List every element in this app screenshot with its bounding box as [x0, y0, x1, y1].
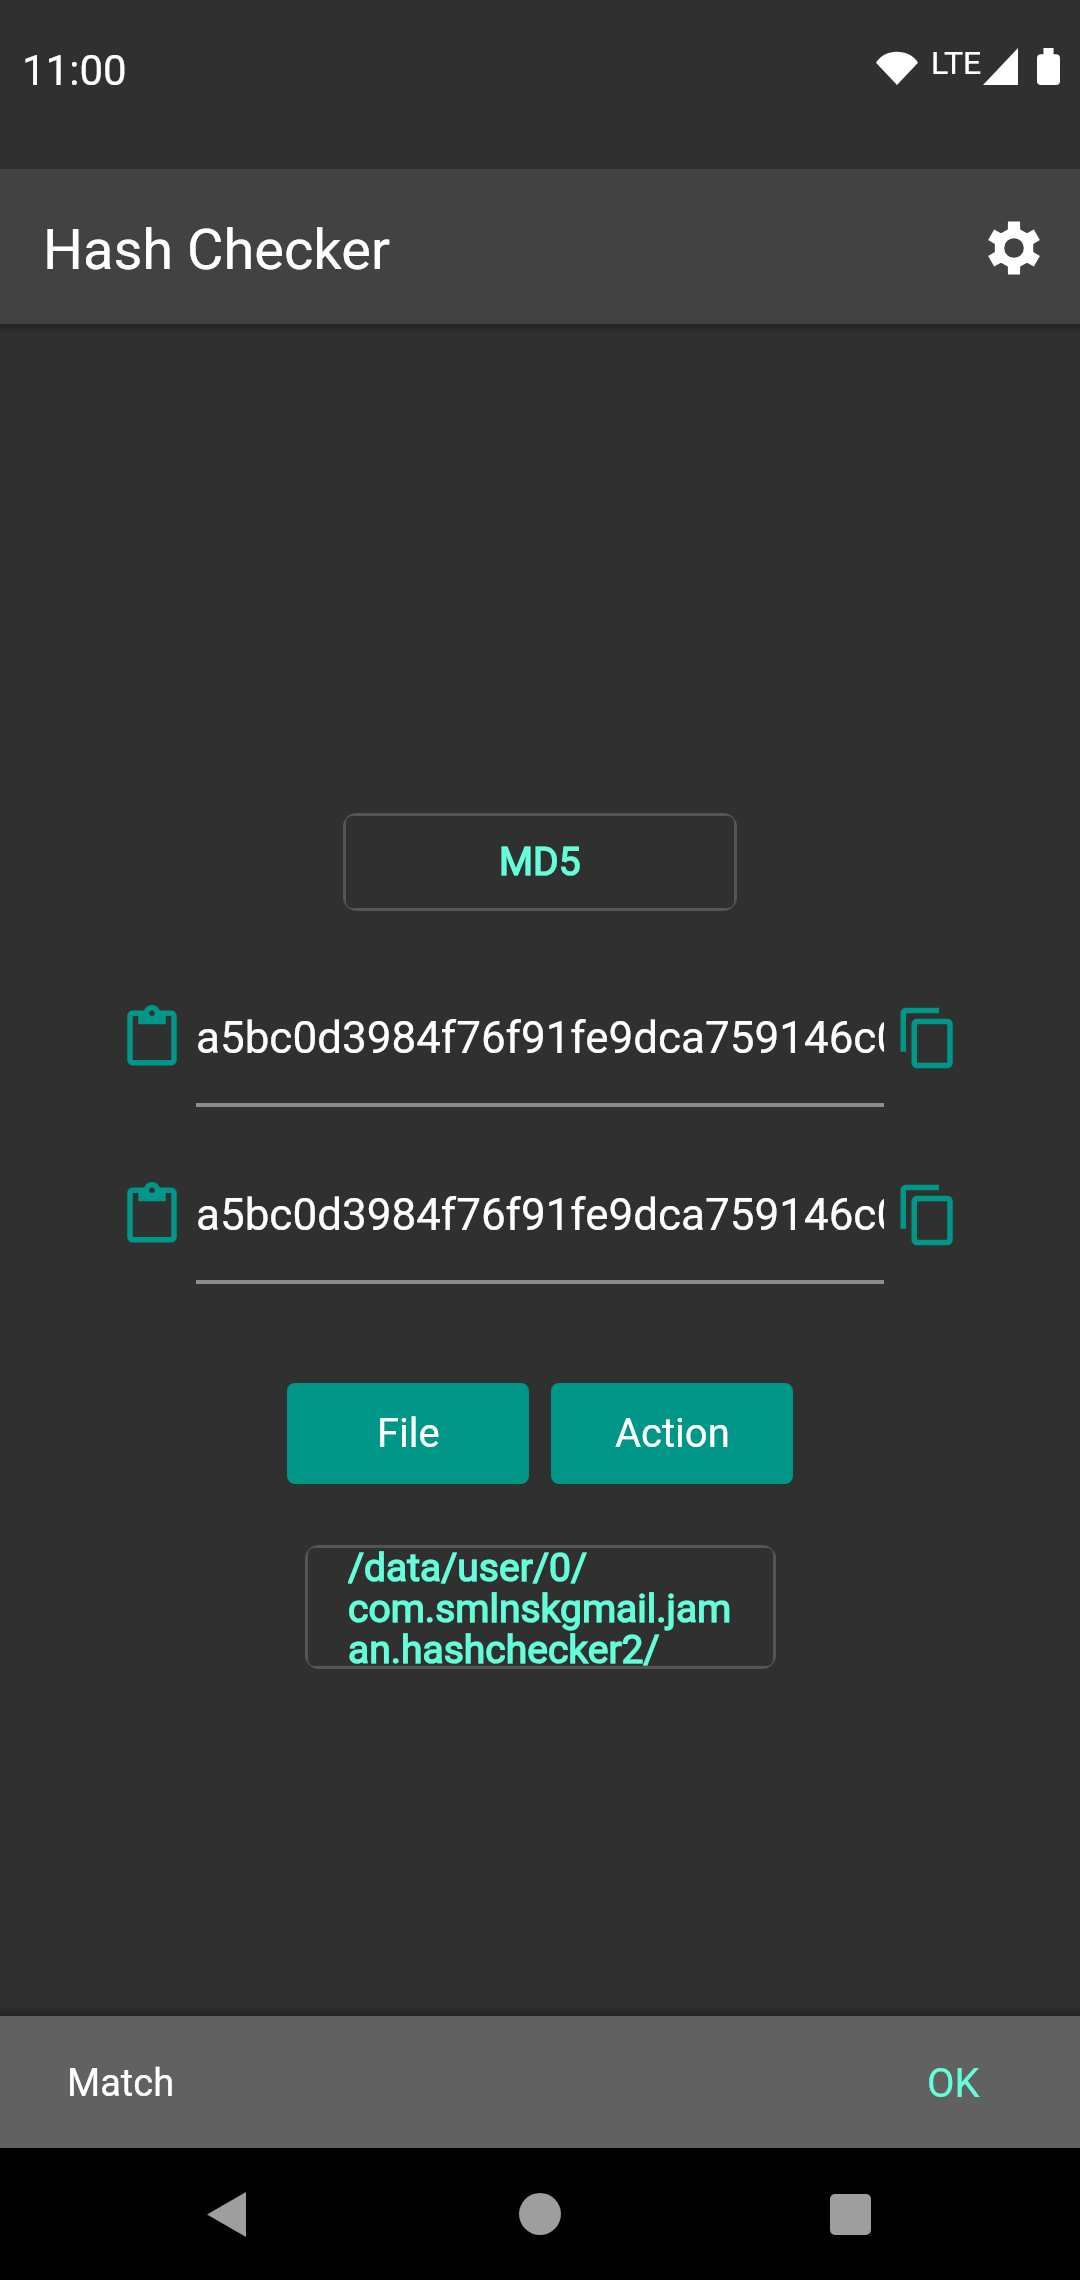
- button[interactable]: Paste hash: [118, 1181, 186, 1249]
- staticText: a5bc0d3984f76f91fe9dca759146c0: [196, 1012, 884, 1064]
- button[interactable]: Settings: [960, 194, 1068, 302]
- button[interactable]: Paste hash: [118, 1004, 186, 1072]
- staticText: Action: [615, 1410, 730, 1457]
- staticText: a5bc0d3984f76f91fe9dca759146c0: [196, 1189, 884, 1241]
- staticText: Match: [67, 2061, 175, 2106]
- staticText: LTE: [931, 44, 982, 82]
- button[interactable]: Back: [184, 2172, 268, 2256]
- button[interactable]: Action: [551, 1383, 793, 1484]
- button[interactable]: OK: [897, 2037, 1010, 2128]
- staticText: OK: [927, 2060, 980, 2107]
- staticText: Hash Checker: [43, 217, 390, 283]
- staticText: /data/user/0/ com.smlnskgmail.jam an.has…: [348, 1545, 732, 1669]
- staticText: File: [377, 1410, 440, 1457]
- button[interactable]: File: [287, 1383, 529, 1484]
- staticText: MD5: [499, 839, 581, 885]
- button[interactable]: MD5: [343, 813, 737, 911]
- button[interactable]: Home: [498, 2172, 582, 2256]
- button[interactable]: Copy hash: [894, 1181, 962, 1249]
- button[interactable]: Recent apps: [808, 2172, 892, 2256]
- button[interactable]: Copy hash: [894, 1004, 962, 1072]
- staticText: 11:00: [22, 46, 127, 95]
- button[interactable]: /data/user/0/ com.smlnskgmail.jam an.has…: [305, 1545, 776, 1669]
